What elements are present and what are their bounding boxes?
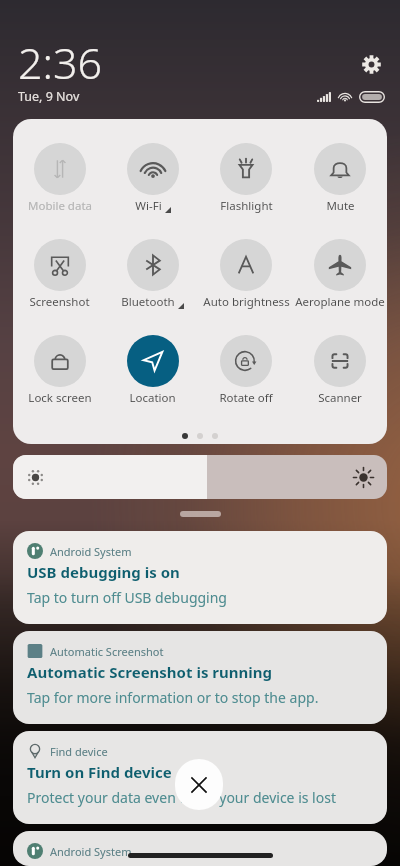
staticText: Lock screen <box>28 390 92 406</box>
staticText: Find device <box>50 744 108 759</box>
staticText: Turn on Find device <box>27 762 172 782</box>
staticText: Bluetooth <box>121 294 175 310</box>
button[interactable]: Flashlight <box>199 143 293 214</box>
staticText: Tap for more information or to stop the … <box>27 688 319 707</box>
staticText: Automatic Screenshot <box>50 644 164 659</box>
staticText: Protect your data even when your device … <box>27 788 336 807</box>
staticText: Location <box>129 390 176 406</box>
button[interactable]: Bluetooth <box>106 239 199 310</box>
button[interactable]: Lock screen <box>13 335 106 406</box>
staticText: Screenshot <box>29 294 90 310</box>
button[interactable]: Android System <box>13 831 387 866</box>
staticText: Tap to turn off USB debugging <box>27 588 227 607</box>
staticText: Flashlight <box>220 198 273 214</box>
button[interactable]: Brightness <box>13 455 387 499</box>
staticText: USB debugging is on <box>27 562 180 582</box>
button[interactable]: Android System <box>13 531 387 624</box>
staticText: Auto brightness <box>203 294 290 310</box>
button[interactable]: Aeroplane mode <box>293 239 387 310</box>
staticText: Android System <box>50 844 132 859</box>
staticText: Rotate off <box>219 390 273 406</box>
staticText: Scanner <box>318 390 362 406</box>
button[interactable]: Auto brightness <box>199 239 293 310</box>
button[interactable]: Rotate off <box>199 335 293 406</box>
staticText: Android System <box>50 544 132 559</box>
staticText: Automatic Screenshot is running <box>27 662 272 682</box>
button[interactable]: Screenshot <box>13 239 106 310</box>
button[interactable]: Wi-Fi <box>106 143 199 214</box>
staticText: Mute <box>326 198 355 214</box>
staticText: Aeroplane mode <box>295 294 385 310</box>
button[interactable]: Mobile data <box>13 143 106 214</box>
button[interactable]: Automatic Screenshot <box>13 631 387 724</box>
button[interactable]: Drag handle <box>180 511 221 517</box>
button[interactable]: Mute <box>293 143 387 214</box>
button[interactable]: Scanner <box>293 335 387 406</box>
staticText: 2:36 <box>18 33 103 92</box>
staticText: Tue, 9 Nov <box>18 88 80 105</box>
button[interactable]: Find device <box>13 731 387 824</box>
staticText: Wi-Fi <box>135 198 162 214</box>
button[interactable]: Location <box>106 335 199 406</box>
button[interactable]: Settings <box>355 48 388 81</box>
button[interactable]: Clear all notifications <box>175 759 223 810</box>
staticText: Mobile data <box>28 198 92 214</box>
